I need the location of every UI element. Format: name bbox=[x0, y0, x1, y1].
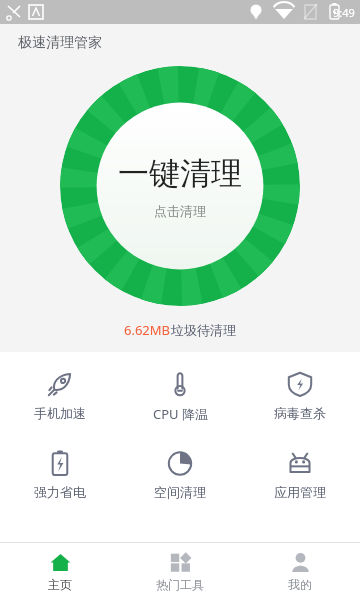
button[interactable]: 我的 bbox=[240, 543, 360, 600]
staticText: 一键清理 bbox=[118, 154, 242, 193]
button[interactable]: 主页 bbox=[0, 543, 120, 600]
staticText: 极速清理管家 bbox=[18, 34, 102, 52]
staticText: 空间清理 bbox=[154, 484, 206, 500]
button[interactable]: 强力省电 bbox=[0, 445, 120, 504]
staticText: 6.62MB bbox=[124, 321, 171, 339]
staticText: 强力省电 bbox=[34, 484, 86, 500]
staticText: 手机加速 bbox=[34, 405, 86, 421]
button[interactable]: 手机加速 bbox=[0, 366, 120, 425]
staticText: 点击清理 bbox=[154, 203, 206, 219]
staticText: 应用管理 bbox=[274, 484, 326, 500]
button[interactable]: CPU 降温 bbox=[120, 366, 240, 427]
button[interactable]: 应用管理 bbox=[240, 445, 360, 504]
button[interactable]: 一键清理 bbox=[60, 66, 300, 306]
staticText: 9:49 bbox=[333, 5, 355, 20]
button[interactable]: 热门工具 bbox=[120, 543, 240, 600]
staticText: 病毒查杀 bbox=[274, 405, 326, 421]
staticText: 我的 bbox=[288, 577, 312, 592]
staticText: 主页 bbox=[48, 577, 72, 592]
staticText: CPU 降温 bbox=[153, 405, 208, 423]
staticText: 垃圾待清理 bbox=[171, 322, 236, 338]
button[interactable]: 空间清理 bbox=[120, 445, 240, 504]
staticText: 热门工具 bbox=[156, 577, 204, 592]
button[interactable]: 病毒查杀 bbox=[240, 366, 360, 425]
